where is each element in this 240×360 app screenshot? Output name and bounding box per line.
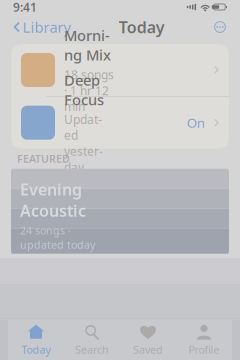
button[interactable]: Profile	[176, 323, 232, 356]
staticText: Morning Mix	[64, 26, 111, 65]
staticText: 9:41	[13, 0, 37, 15]
button[interactable]: More options	[211, 14, 229, 40]
staticText: Today	[21, 342, 50, 357]
button[interactable]: Library	[11, 14, 72, 40]
staticText: 18 songs · 1 hr 12 min	[64, 67, 114, 114]
staticText: Profile	[188, 342, 219, 357]
staticText: Deep Focus	[64, 70, 104, 109]
button[interactable]: Morning Mix	[11, 44, 229, 96]
staticText: Updated yesterday	[64, 111, 103, 175]
button[interactable]: Evening Acoustic	[11, 169, 229, 254]
button[interactable]: Today	[8, 323, 64, 356]
staticText: Saved	[133, 342, 163, 357]
button[interactable]: Deep Focus	[11, 97, 229, 149]
staticText: Library	[22, 17, 70, 37]
staticText: Search	[75, 342, 109, 357]
staticText: On	[187, 114, 205, 131]
staticText: FEATURED	[17, 152, 70, 166]
staticText: Evening Acoustic	[20, 179, 86, 221]
button[interactable]: Search	[64, 323, 120, 356]
staticText: Today	[119, 16, 165, 38]
staticText: 24 songs · updated today	[20, 223, 95, 252]
button[interactable]: Saved	[120, 323, 176, 356]
